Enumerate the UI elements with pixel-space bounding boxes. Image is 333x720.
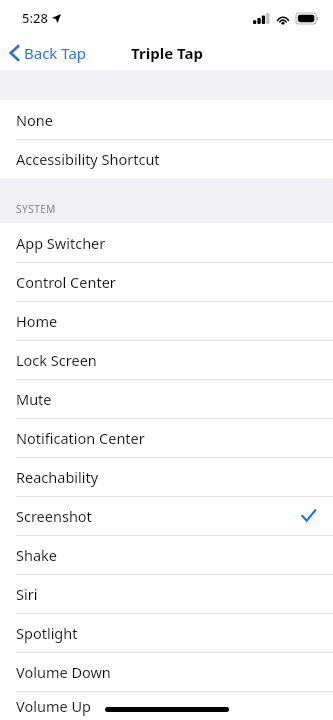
staticText: Mute	[16, 389, 52, 409]
staticText: Control Center	[16, 272, 116, 292]
staticText: Shake	[16, 545, 57, 565]
staticText: Lock Screen	[16, 350, 97, 370]
button[interactable]: Notification Center	[0, 418, 333, 457]
button[interactable]: Lock Screen	[0, 340, 333, 379]
staticText: Spotlight	[16, 623, 78, 643]
staticText: App Switcher	[16, 233, 106, 253]
button[interactable]: Spotlight	[0, 613, 333, 652]
button[interactable]: Accessibility Shortcut	[0, 139, 333, 178]
staticText: SYSTEM	[16, 202, 56, 216]
button[interactable]: Shake	[0, 535, 333, 574]
button[interactable]: None	[0, 100, 333, 139]
button[interactable]: Mute	[0, 379, 333, 418]
staticText: Volume Up	[16, 696, 91, 716]
staticText: Triple Tap	[131, 43, 203, 63]
button[interactable]: Reachability	[0, 457, 333, 496]
staticText: Screenshot	[16, 506, 92, 526]
staticText: Siri	[16, 584, 38, 604]
staticText: None	[16, 110, 53, 130]
staticText: Notification Center	[16, 428, 145, 448]
button[interactable]: Home	[0, 301, 333, 340]
staticText: Accessibility Shortcut	[16, 149, 160, 169]
staticText: Reachability	[16, 467, 99, 487]
button[interactable]: Siri	[0, 574, 333, 613]
staticText: Home	[16, 311, 58, 331]
staticText: Back Tap	[24, 43, 87, 63]
button[interactable]: Volume Down	[0, 652, 333, 691]
button[interactable]: Volume Up	[0, 691, 333, 720]
button[interactable]: App Switcher	[0, 223, 333, 262]
button[interactable]: Back Tap	[0, 36, 95, 70]
button[interactable]: Screenshot	[0, 496, 333, 535]
staticText: Volume Down	[16, 662, 111, 682]
staticText: 5:28	[22, 9, 48, 27]
button[interactable]: Control Center	[0, 262, 333, 301]
